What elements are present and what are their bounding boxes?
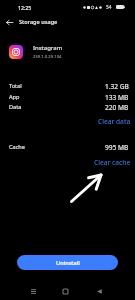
staticText: Uninstall [56, 259, 80, 267]
button[interactable]: Home [54, 280, 76, 300]
staticText: Storage usage [19, 18, 58, 26]
staticText: Total [9, 82, 22, 90]
button[interactable]: Back [0, 13, 18, 31]
button[interactable]: Back [88, 280, 110, 300]
button[interactable]: Uninstall [17, 255, 118, 270]
staticText: Clear data [98, 117, 131, 125]
button[interactable]: Clear data [97, 116, 132, 126]
staticText: 259.1.0.29.104 [33, 54, 62, 60]
staticText: 54 [106, 4, 112, 10]
button[interactable]: Recent apps [22, 280, 44, 300]
staticText: 220 MB [105, 103, 129, 111]
button[interactable]: Clear cache [93, 157, 132, 167]
staticText: 133 MB [105, 93, 129, 101]
staticText: Data [9, 103, 22, 111]
staticText: Clear cache [94, 158, 131, 166]
staticText: Cache [9, 143, 25, 151]
staticText: 995 MB [105, 143, 129, 151]
staticText: Instagram [33, 44, 63, 52]
staticText: App [9, 93, 20, 101]
staticText: 12:25 [18, 4, 32, 11]
staticText: 1.32 GB [105, 82, 129, 90]
